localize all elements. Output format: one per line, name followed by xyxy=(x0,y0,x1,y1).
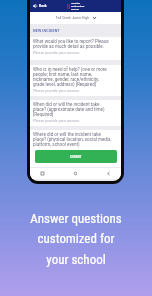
staticText: SUBMIT xyxy=(70,155,82,158)
button[interactable]: Back xyxy=(30,2,49,10)
staticText: Please provide your answer xyxy=(33,88,80,92)
staticText: Please provide your answer xyxy=(33,50,80,54)
staticText: Answer questions customized for your sch… xyxy=(30,211,122,268)
button[interactable]: What would you like to report? Please pr… xyxy=(30,37,121,60)
staticText: Please provide your answer xyxy=(33,118,80,122)
staticText: Where did or will the incident take plac… xyxy=(33,132,111,147)
other: Back xyxy=(107,172,110,175)
button[interactable]: Where did or will the incident take plac… xyxy=(30,130,121,150)
button[interactable]: Fall Creek Junior High xyxy=(54,13,98,23)
button[interactable]: SUBMIT xyxy=(35,150,117,163)
staticText: Hamilton xyxy=(71,2,80,5)
button[interactable]: Who is in need of help? (one or more peo… xyxy=(30,65,121,96)
button[interactable]: When did or will the incident take place… xyxy=(30,100,121,126)
staticText: Back xyxy=(39,4,47,8)
staticText: What would you like to report? Please pr… xyxy=(33,39,111,49)
other: Recent apps xyxy=(41,172,44,175)
staticText: Who is in need of help? (one or more peo… xyxy=(33,67,111,87)
staticText: When did or will the incident take place… xyxy=(33,102,111,117)
staticText: NEW INCIDENT xyxy=(33,29,60,33)
staticText: Schools xyxy=(71,8,79,11)
other: Home xyxy=(74,172,77,175)
staticText: Fall Creek Junior High xyxy=(56,16,90,20)
staticText: Southeastern xyxy=(71,5,85,8)
